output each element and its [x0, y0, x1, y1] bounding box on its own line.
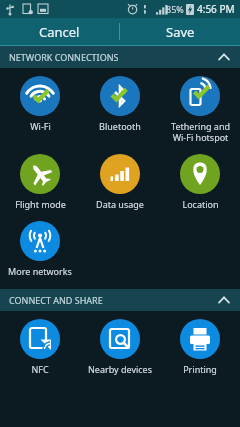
button[interactable]: Cancel — [0, 18, 119, 45]
button[interactable]: NETWORK CONNECTIONS — [0, 46, 240, 68]
staticText: NETWORK CONNECTIONS — [9, 51, 119, 63]
button[interactable]: Location — [160, 153, 240, 211]
staticText: Tethering and Wi-Fi hotspot — [171, 120, 230, 143]
staticText: Cancel — [39, 23, 80, 41]
staticText: More networks — [8, 265, 72, 277]
button[interactable]: Bluetooth — [80, 75, 160, 133]
button[interactable]: Data usage — [80, 153, 160, 211]
button[interactable]: CONNECT AND SHARE — [0, 289, 240, 311]
staticText: Location — [182, 198, 219, 210]
staticText: Bluetooth — [99, 120, 141, 132]
staticText: CONNECT AND SHARE — [9, 294, 103, 306]
button[interactable]: Save — [120, 18, 240, 45]
button[interactable]: More networks — [0, 220, 80, 278]
staticText: 85% — [166, 3, 184, 15]
staticText: Save — [166, 23, 195, 41]
staticText: Data usage — [96, 198, 144, 210]
staticText: Wi-Fi — [30, 120, 51, 132]
staticText: 4:56 PM — [197, 2, 235, 16]
other: Collapse section — [217, 50, 231, 64]
staticText: Flight mode — [15, 198, 66, 210]
button[interactable]: Flight mode — [0, 153, 80, 211]
staticText: Nearby devices — [88, 363, 152, 375]
button[interactable]: Printing — [160, 318, 240, 376]
staticText: NFC — [31, 363, 49, 375]
button[interactable]: Tethering and Wi-Fi hotspot — [160, 75, 240, 144]
button[interactable]: Wi-Fi — [0, 75, 80, 133]
button[interactable]: Nearby devices — [80, 318, 160, 376]
button[interactable]: NFC — [0, 318, 80, 376]
other: Collapse section — [217, 293, 231, 307]
staticText: Printing — [183, 363, 217, 375]
